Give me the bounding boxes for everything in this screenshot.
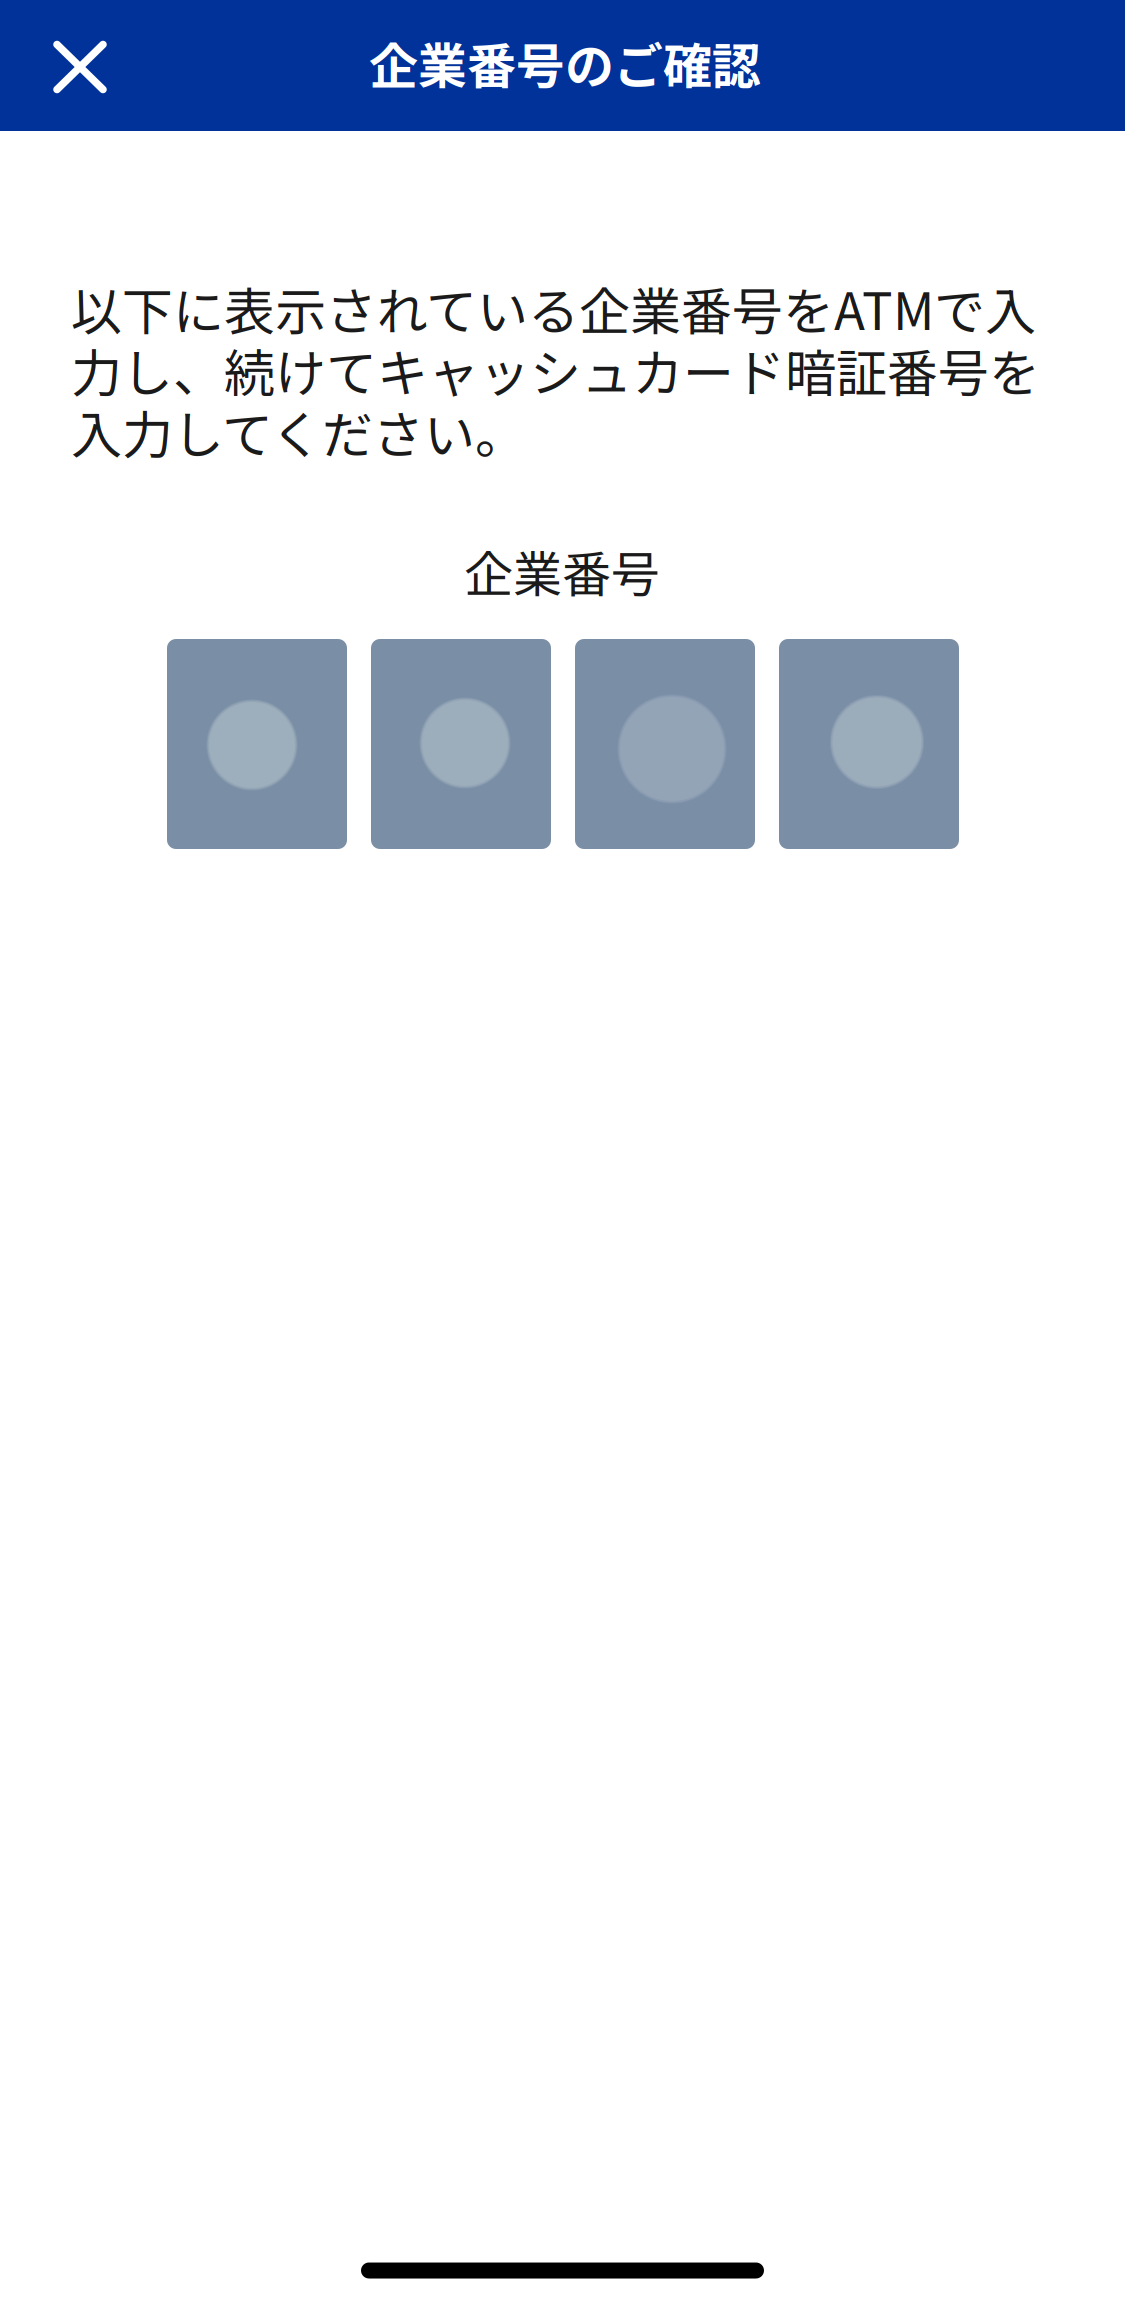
staticText: 企業番号 <box>464 535 660 606</box>
button[interactable]: 閉じる <box>14 1 146 132</box>
staticText: 企業番号のご確認 <box>369 27 761 98</box>
staticText: 以下に表示されている企業番号をATMで入力し、続けてキャッシュカード暗証番号を入… <box>71 271 1040 468</box>
